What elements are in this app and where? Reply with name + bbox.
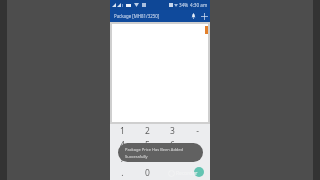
button[interactable]: .: [110, 166, 135, 180]
staticText: 1: [120, 125, 125, 137]
button[interactable]: 8: [135, 152, 160, 166]
staticText: 2: [145, 125, 150, 137]
button[interactable]: Add: [199, 10, 210, 22]
button[interactable]: 1: [110, 124, 135, 138]
button[interactable]: Notifications: [188, 10, 199, 22]
button[interactable]: -: [185, 124, 210, 138]
staticText: 5: [145, 139, 150, 151]
staticText: 3: [170, 125, 175, 137]
button[interactable]: 2: [135, 124, 160, 138]
staticText: .: [121, 167, 124, 179]
staticText: 0: [145, 167, 150, 179]
staticText: 4: [120, 139, 125, 151]
button[interactable]: 6: [160, 138, 185, 152]
staticText: Package Price Has Been Added Successfull…: [125, 147, 184, 159]
staticText: 7: [120, 153, 125, 165]
staticText: 4:30 am: [190, 2, 208, 8]
staticText: -: [196, 125, 199, 137]
button[interactable]: Submit: [194, 167, 204, 177]
staticText: 6: [170, 139, 175, 151]
button[interactable]: 4: [110, 138, 135, 152]
button[interactable]: 5: [135, 138, 160, 152]
button[interactable]: 7: [110, 152, 135, 166]
button[interactable]: [185, 138, 210, 152]
button[interactable]: 9: [160, 152, 185, 166]
staticText: 34%: [179, 2, 189, 8]
staticText: Recorder: [176, 170, 198, 177]
button[interactable]: [185, 152, 210, 166]
staticText: 8: [145, 153, 150, 165]
button[interactable]: 0: [135, 166, 160, 180]
button[interactable]: 3: [160, 124, 185, 138]
staticText: 9: [170, 153, 175, 165]
staticText: Package [MH81/3250]: [114, 13, 188, 19]
